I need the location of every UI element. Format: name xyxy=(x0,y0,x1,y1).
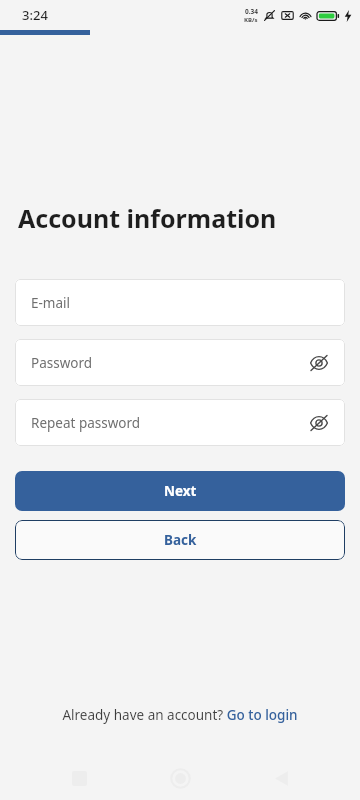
staticText: Back xyxy=(164,531,197,549)
button[interactable]: Next xyxy=(15,471,345,511)
staticText: KB/s xyxy=(244,16,258,24)
button[interactable]: Show password xyxy=(306,410,332,436)
button[interactable]: Back xyxy=(15,520,345,560)
staticText: Already have an account? Go to login xyxy=(62,706,298,724)
staticText: 0.34 xyxy=(245,7,258,16)
staticText: Password xyxy=(31,354,93,372)
staticText: Repeat password xyxy=(31,414,141,432)
button[interactable]: Repeat password xyxy=(15,399,345,446)
button[interactable]: Show password xyxy=(306,350,332,376)
button[interactable]: Password xyxy=(15,339,345,386)
staticText: 3:24 xyxy=(22,6,48,24)
staticText: Account information xyxy=(18,201,277,235)
staticText: Next xyxy=(164,482,197,500)
button[interactable]: Already have an account? Go to login xyxy=(54,702,306,728)
button[interactable]: E-mail xyxy=(15,279,345,326)
staticText: E-mail xyxy=(31,294,71,312)
